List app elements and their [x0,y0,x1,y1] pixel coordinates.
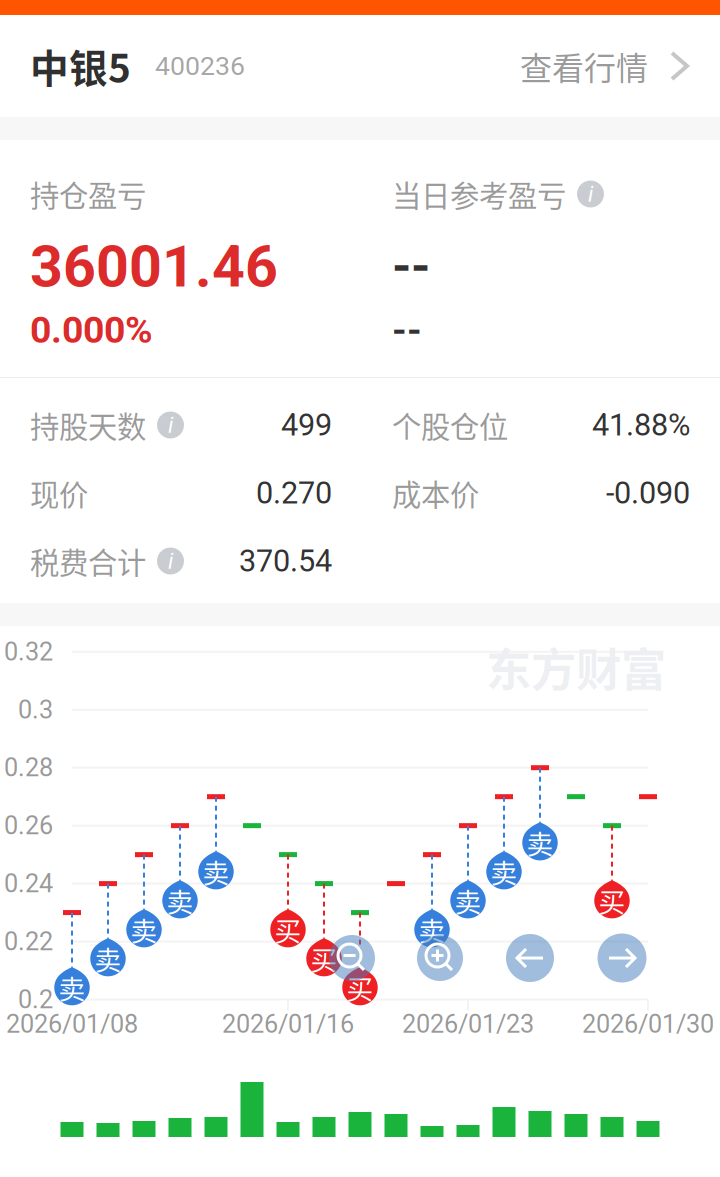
staticText: 400236 [155,50,245,82]
staticText: 卖 [166,881,193,920]
staticText: 持仓盈亏 [30,173,146,215]
staticText: 买 [274,910,301,949]
staticText: 个股仓位 [392,404,508,446]
staticText: 2026/01/23 [402,1009,534,1039]
staticText: 0.32 [4,637,53,667]
staticText: 卖 [490,852,517,891]
staticText: 41.88% [592,407,690,443]
staticText: 2026/01/16 [222,1009,354,1039]
staticText: 持股天数 [30,404,146,446]
staticText: 卖 [454,881,481,920]
staticText: 卖 [130,910,157,949]
staticText: i [168,548,173,574]
staticText: 东方财富 [486,634,666,700]
button[interactable]: Scroll right [597,933,646,982]
staticText: 499 [281,407,332,443]
staticText: 0.24 [4,869,53,898]
staticText: 0.270 [256,475,332,511]
staticText: 成本价 [392,472,479,514]
staticText: 0.22 [4,927,53,956]
staticText: 卖 [418,910,445,949]
staticText: 卖 [58,968,85,1007]
staticText: 当日参考盈亏 [392,173,566,215]
staticText: 买 [310,939,337,978]
staticText: 2026/01/30 [582,1009,714,1039]
staticText: i [588,181,593,207]
staticText: 卖 [202,852,229,891]
staticText: 0.000% [30,308,153,352]
staticText: 2026/01/08 [6,1009,138,1039]
staticText: 买 [346,968,373,1007]
staticText: 税费合计 [30,540,146,582]
staticText: 现价 [30,472,88,514]
staticText: 卖 [94,939,121,978]
staticText: -0.090 [606,475,690,511]
staticText: 0.26 [4,811,53,840]
staticText: 36001.46 [30,233,278,301]
button[interactable]: Zoom in [417,935,463,981]
staticText: 查看行情 [520,43,648,89]
staticText: 中银5 [30,38,131,94]
button[interactable]: Zoom out [329,935,375,981]
staticText: -- [392,308,422,352]
staticText: 370.54 [239,543,332,579]
button[interactable]: Scroll left [506,934,554,982]
button[interactable]: 查看行情 [520,29,687,103]
staticText: 0.2 [18,985,53,1014]
staticText: 0.3 [18,695,53,725]
staticText: 卖 [526,823,553,862]
staticText: 0.28 [4,753,53,783]
staticText: i [168,412,173,438]
staticText: -- [392,238,430,296]
staticText: 买 [598,881,625,920]
